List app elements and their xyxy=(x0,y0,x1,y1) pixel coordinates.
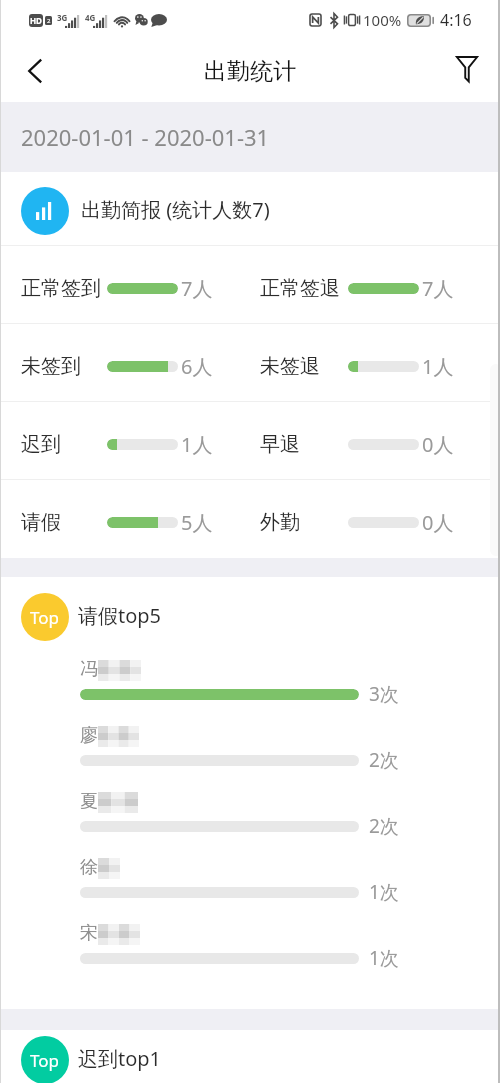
staticText: 0人 xyxy=(422,509,454,536)
staticText: 徐 xyxy=(80,856,98,879)
staticText: 1次 xyxy=(369,945,399,971)
staticText: Top xyxy=(30,606,60,629)
staticText: 迟到top1 xyxy=(78,1045,162,1072)
staticText: 4G xyxy=(85,12,96,23)
button[interactable]: 廖 xyxy=(80,716,482,782)
button[interactable]: 正常签到 xyxy=(0,246,239,323)
button[interactable]: 迟到 xyxy=(0,402,239,479)
staticText: 宋 xyxy=(80,922,98,945)
button[interactable]: Back xyxy=(0,40,60,102)
button[interactable]: Top xyxy=(21,577,500,650)
staticText: 4:16 xyxy=(440,9,472,31)
staticText: 请假top5 xyxy=(78,602,162,629)
staticText: 2 xyxy=(47,17,51,25)
button[interactable]: 徐 xyxy=(80,848,482,914)
button[interactable]: 正常签退 xyxy=(239,246,478,323)
staticText: 正常签到 xyxy=(21,276,101,301)
staticText: 廖 xyxy=(80,724,98,747)
staticText: 未签退 xyxy=(260,354,320,379)
button[interactable]: Filter xyxy=(434,40,500,102)
button[interactable]: 外勤 xyxy=(239,480,478,557)
staticText: 0人 xyxy=(422,431,454,458)
staticText: 2020-01-01 - 2020-01-31 xyxy=(21,122,270,152)
staticText: 早退 xyxy=(260,432,300,457)
button[interactable]: 2020-01-01 - 2020-01-31 xyxy=(0,102,500,172)
staticText: HD xyxy=(30,15,42,26)
button[interactable]: 夏 xyxy=(80,782,482,848)
staticText: 外勤 xyxy=(260,510,300,535)
staticText: 2次 xyxy=(369,747,399,773)
staticText: 正常签退 xyxy=(260,276,340,301)
staticText: 2次 xyxy=(369,813,399,839)
staticText: 1次 xyxy=(369,879,399,905)
button[interactable]: 冯 xyxy=(80,650,482,716)
staticText: 6人 xyxy=(181,353,213,380)
staticText: 3次 xyxy=(369,681,399,707)
button[interactable]: 宋 xyxy=(80,914,482,980)
staticText: 3G xyxy=(57,12,68,23)
staticText: 出勤简报 (统计人数7) xyxy=(81,196,270,223)
button[interactable]: 早退 xyxy=(239,402,478,479)
staticText: 请假 xyxy=(21,510,61,535)
staticText: 出勤统计 xyxy=(204,57,296,86)
staticText: 7人 xyxy=(422,275,454,302)
button[interactable]: 未签退 xyxy=(239,324,478,401)
staticText: 冯 xyxy=(80,658,98,681)
staticText: 夏 xyxy=(80,790,98,813)
staticText: 迟到 xyxy=(21,432,61,457)
button[interactable]: 出勤简报 (统计人数7) xyxy=(21,172,500,245)
button[interactable]: 请假 xyxy=(0,480,239,557)
staticText: Top xyxy=(30,1049,60,1072)
button[interactable]: 未签到 xyxy=(0,324,239,401)
staticText: 100% xyxy=(363,10,402,30)
staticText: 未签到 xyxy=(21,354,81,379)
staticText: 7人 xyxy=(181,275,213,302)
staticText: 1人 xyxy=(422,353,454,380)
button[interactable]: Top xyxy=(21,1030,500,1083)
staticText: 5人 xyxy=(181,509,213,536)
staticText: 1人 xyxy=(181,431,213,458)
